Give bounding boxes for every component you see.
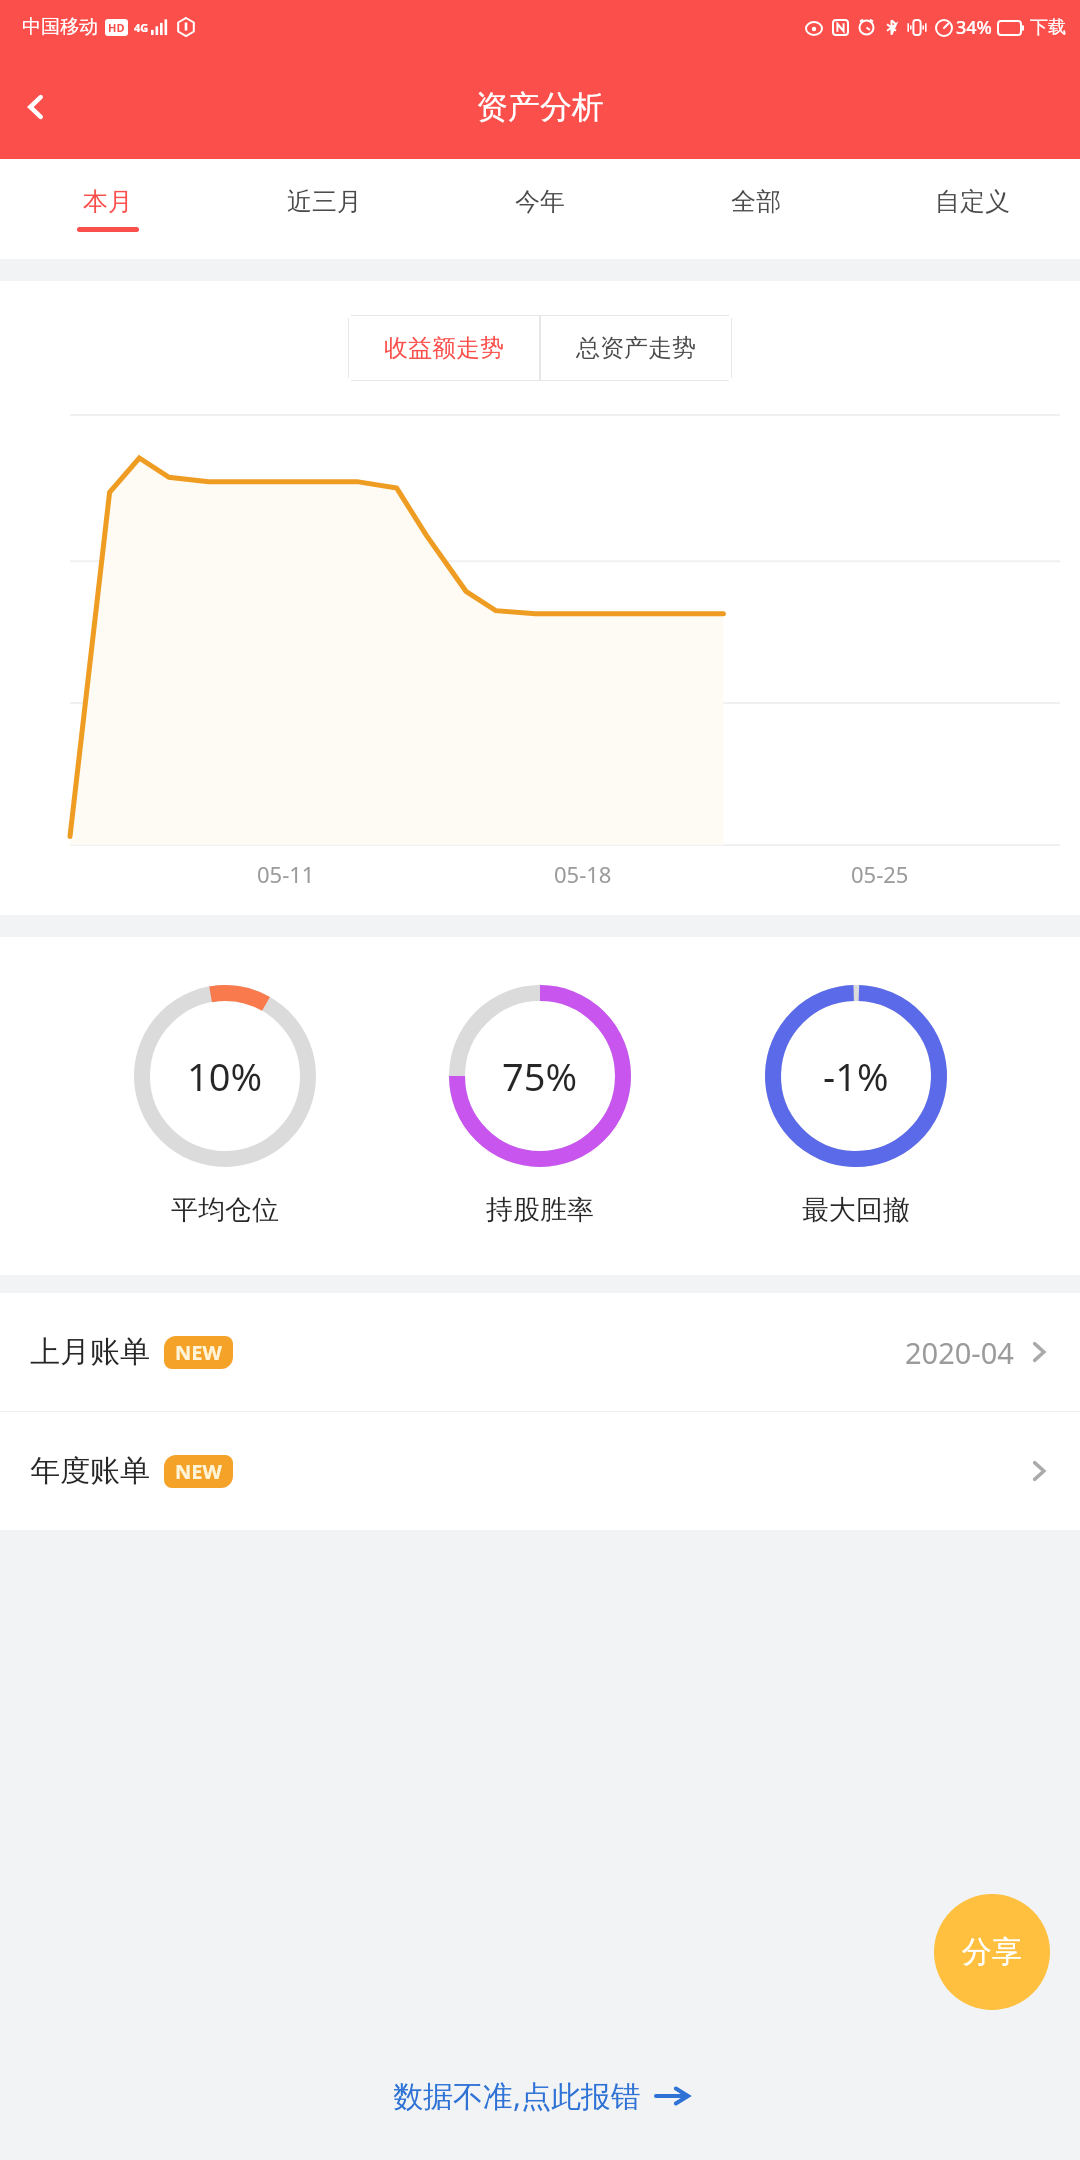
staticText: 总资产走势 bbox=[576, 333, 696, 363]
staticText: 05-11 bbox=[257, 859, 315, 889]
button[interactable]: 数据不准,点此报错 bbox=[0, 2030, 1080, 2160]
staticText: 收益额走势 bbox=[384, 333, 504, 363]
staticText: 资产分析 bbox=[476, 87, 604, 127]
staticText: 10% bbox=[187, 1050, 263, 1102]
button[interactable]: 近三月 bbox=[216, 159, 432, 259]
staticText: NEW bbox=[175, 1339, 222, 1366]
staticText: 下载 bbox=[1030, 16, 1066, 39]
button[interactable]: 今年 bbox=[432, 159, 648, 259]
button[interactable]: Back bbox=[0, 71, 72, 143]
staticText: 75% bbox=[502, 1050, 578, 1102]
staticText: 05-18 bbox=[554, 859, 612, 889]
staticText: 近三月 bbox=[287, 186, 362, 217]
staticText: 34% bbox=[956, 15, 992, 40]
staticText: 上月账单 bbox=[30, 1333, 150, 1371]
staticText: 全部 bbox=[731, 186, 781, 217]
staticText: 自定义 bbox=[935, 186, 1010, 217]
staticText: 持股胜率 bbox=[486, 1193, 594, 1227]
button[interactable]: 上月账单 bbox=[0, 1293, 1080, 1411]
staticText: 数据不准,点此报错 bbox=[393, 2075, 642, 2116]
button[interactable]: 收益额走势 bbox=[348, 315, 540, 381]
staticText: 分享 bbox=[962, 1933, 1022, 1971]
staticText: HD bbox=[108, 20, 125, 35]
button[interactable]: 全部 bbox=[648, 159, 864, 259]
staticText: 最大回撤 bbox=[802, 1193, 910, 1227]
button[interactable]: 自定义 bbox=[864, 159, 1080, 259]
staticText: -1% bbox=[823, 1050, 889, 1102]
staticText: NEW bbox=[175, 1458, 222, 1485]
staticText: 本月 bbox=[83, 186, 133, 217]
staticText: 年度账单 bbox=[30, 1452, 150, 1490]
staticText: 中国移动 bbox=[22, 15, 98, 39]
button[interactable]: 本月 bbox=[0, 159, 216, 259]
staticText: 今年 bbox=[515, 186, 565, 217]
staticText: 05-25 bbox=[851, 859, 909, 889]
button[interactable]: 年度账单 bbox=[0, 1412, 1080, 1530]
staticText: 4G bbox=[134, 20, 149, 35]
staticText: 2020-04 bbox=[905, 1333, 1014, 1372]
button[interactable]: 总资产走势 bbox=[540, 315, 732, 381]
button[interactable]: 分享 bbox=[934, 1894, 1050, 2010]
staticText: 平均仓位 bbox=[171, 1193, 279, 1227]
